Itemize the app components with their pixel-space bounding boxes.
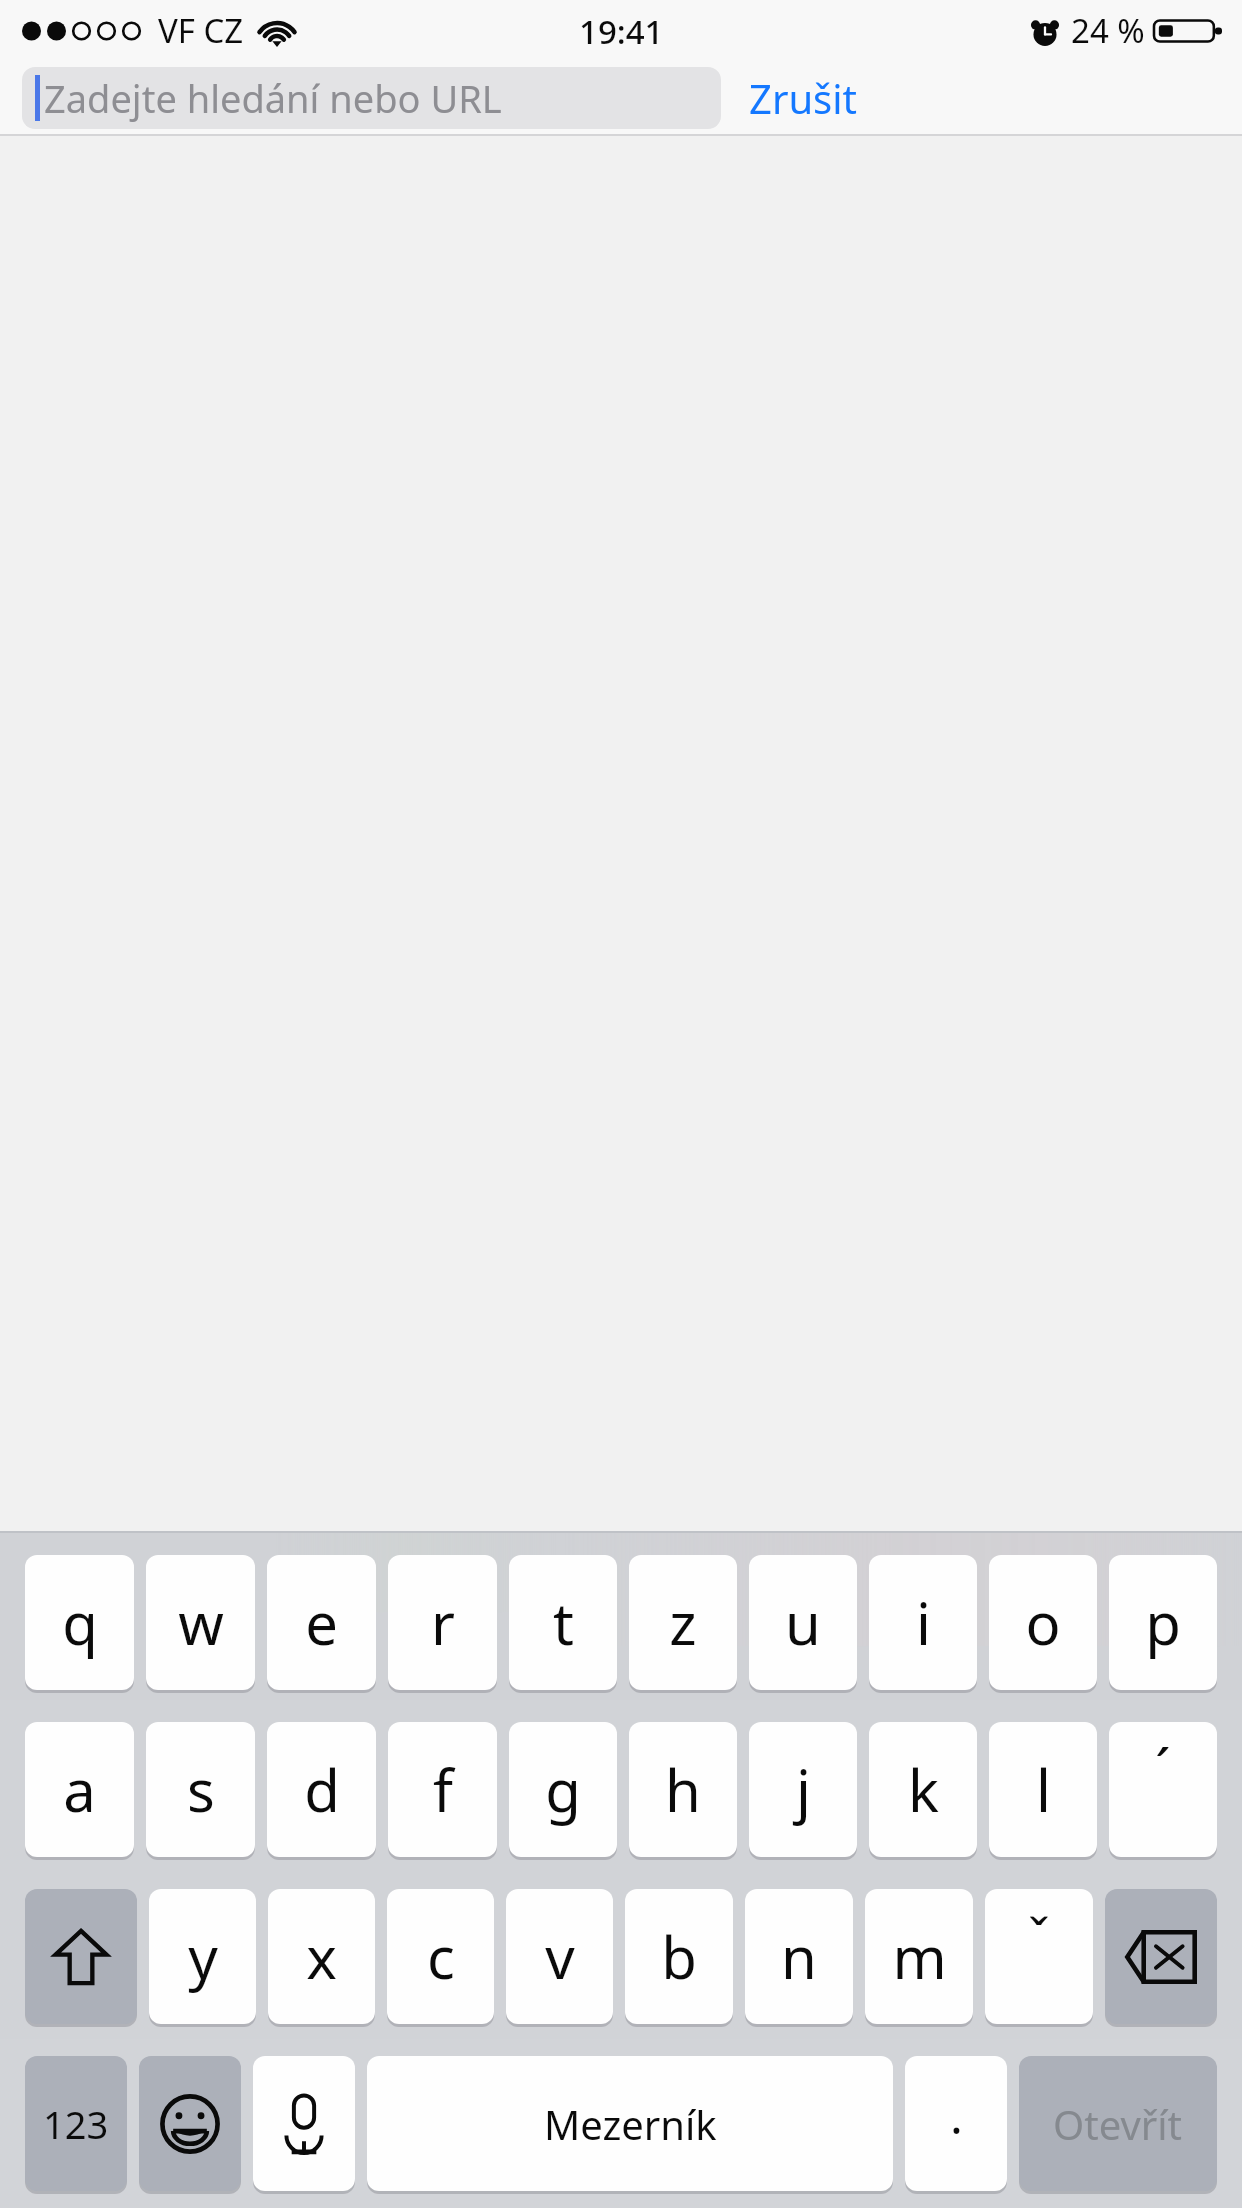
staticText: ˇ xyxy=(1028,1901,1050,1972)
staticText: . xyxy=(950,2083,963,2148)
button[interactable]: Backspace xyxy=(1105,1889,1217,2024)
button[interactable]: v xyxy=(506,1889,613,2024)
button[interactable]: Emoji xyxy=(139,2056,241,2191)
staticText: Zadejte hledání nebo URL xyxy=(44,72,502,124)
staticText: 19:41 xyxy=(579,9,664,54)
staticText: ´ xyxy=(1155,1730,1171,1806)
staticText: j xyxy=(796,1750,811,1829)
staticText: i xyxy=(916,1583,931,1662)
staticText: x xyxy=(306,1917,337,1996)
button[interactable]: s xyxy=(146,1722,255,1857)
button[interactable]: Otevřít xyxy=(1019,2056,1217,2191)
button[interactable]: w xyxy=(146,1555,255,1690)
button[interactable]: l xyxy=(989,1722,1097,1857)
button[interactable]: r xyxy=(388,1555,497,1690)
staticText: u xyxy=(785,1583,821,1662)
staticText: d xyxy=(304,1750,340,1829)
button[interactable]: i xyxy=(869,1555,977,1690)
button[interactable]: c xyxy=(387,1889,494,2024)
staticText: h xyxy=(665,1750,701,1829)
staticText: e xyxy=(305,1583,338,1662)
staticText: Otevřít xyxy=(1053,2097,1183,2151)
button[interactable]: ˇ xyxy=(985,1889,1093,2024)
button[interactable]: u xyxy=(749,1555,857,1690)
button[interactable]: y xyxy=(149,1889,256,2024)
staticText: s xyxy=(187,1750,215,1829)
button[interactable]: d xyxy=(267,1722,376,1857)
staticText: n xyxy=(781,1917,817,1996)
staticText: a xyxy=(63,1750,96,1829)
staticText: g xyxy=(545,1750,581,1829)
staticText: k xyxy=(908,1750,939,1829)
staticText: w xyxy=(178,1583,224,1662)
staticText: 24 % xyxy=(1071,8,1145,53)
staticText: VF CZ xyxy=(158,8,244,53)
staticText: Mezerník xyxy=(544,2097,717,2151)
button[interactable]: p xyxy=(1109,1555,1217,1690)
staticText: m xyxy=(892,1917,947,1996)
button[interactable]: j xyxy=(749,1722,857,1857)
button[interactable]: k xyxy=(869,1722,977,1857)
button[interactable]: e xyxy=(267,1555,376,1690)
staticText: Zrušit xyxy=(749,71,858,125)
button[interactable]: b xyxy=(625,1889,733,2024)
button[interactable]: ´ xyxy=(1109,1722,1217,1857)
button[interactable]: Zrušit xyxy=(749,60,858,136)
button[interactable]: t xyxy=(509,1555,617,1690)
button[interactable]: n xyxy=(745,1889,853,2024)
staticText: r xyxy=(431,1583,455,1662)
button[interactable]: m xyxy=(865,1889,973,2024)
staticText: v xyxy=(545,1917,575,1996)
button[interactable]: g xyxy=(509,1722,617,1857)
button[interactable]: Mezerník xyxy=(367,2056,893,2191)
button[interactable]: o xyxy=(989,1555,1097,1690)
button[interactable]: Dictation xyxy=(253,2056,355,2191)
button[interactable]: f xyxy=(388,1722,497,1857)
staticText: y xyxy=(188,1917,218,1996)
button[interactable]: a xyxy=(25,1722,134,1857)
staticText: q xyxy=(62,1583,98,1662)
button[interactable]: z xyxy=(629,1555,737,1690)
button[interactable]: . xyxy=(905,2056,1007,2191)
staticText: o xyxy=(1025,1583,1061,1662)
staticText: b xyxy=(661,1917,697,1996)
staticText: z xyxy=(669,1583,697,1662)
button[interactable]: q xyxy=(25,1555,134,1690)
button[interactable]: x xyxy=(268,1889,375,2024)
staticText: p xyxy=(1145,1583,1181,1662)
button[interactable]: Shift xyxy=(25,1889,137,2024)
staticText: l xyxy=(1036,1750,1051,1829)
staticText: 123 xyxy=(43,2098,109,2150)
staticText: t xyxy=(553,1583,574,1662)
staticText: c xyxy=(427,1917,455,1996)
staticText: f xyxy=(433,1750,453,1829)
button[interactable]: h xyxy=(629,1722,737,1857)
button[interactable]: 123 xyxy=(25,2056,127,2191)
button[interactable]: Zadejte hledání nebo URL xyxy=(22,67,721,129)
